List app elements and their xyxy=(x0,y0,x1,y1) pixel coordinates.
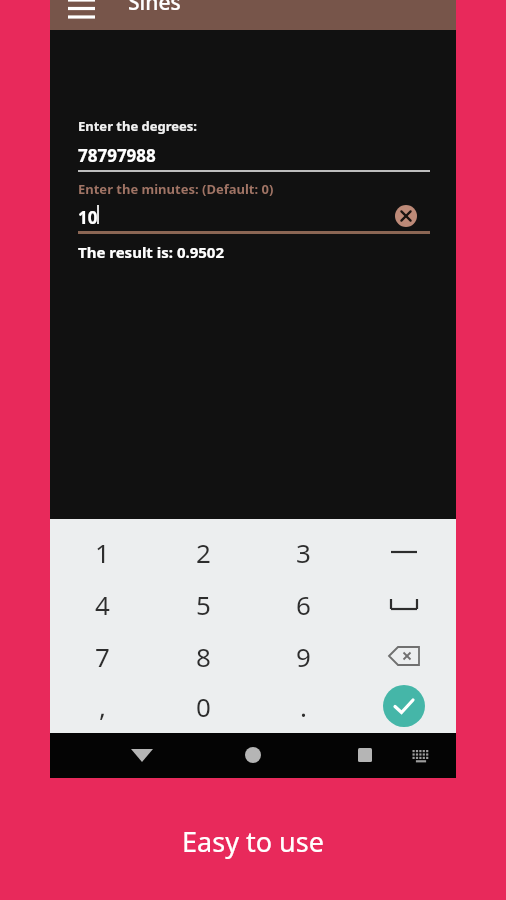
staticText: 0 xyxy=(196,689,211,724)
staticText: 10 xyxy=(78,206,98,229)
staticText: Sines xyxy=(128,0,181,17)
staticText: 3 xyxy=(296,535,311,570)
button[interactable]: 9 xyxy=(253,630,353,682)
button[interactable]: 8 xyxy=(153,630,253,682)
button[interactable]: 4 xyxy=(52,578,152,630)
staticText: 5 xyxy=(196,587,211,622)
button[interactable]: 5 xyxy=(153,578,253,630)
button[interactable]: 6 xyxy=(253,578,353,630)
button[interactable]: Home xyxy=(235,744,271,766)
button[interactable]: Back xyxy=(122,744,162,766)
button[interactable]: 0 xyxy=(153,680,253,732)
staticText: 6 xyxy=(296,587,311,622)
button[interactable]: Switch keyboard xyxy=(405,744,437,766)
staticText: The result is: 0.9502 xyxy=(78,242,225,262)
staticText: . xyxy=(300,689,307,724)
button[interactable]: 7 xyxy=(52,630,152,682)
button[interactable]: Minus xyxy=(354,526,454,578)
staticText: , xyxy=(99,689,106,724)
button[interactable]: Clear text xyxy=(395,205,417,227)
button[interactable]: Recents xyxy=(347,744,383,766)
staticText: 8 xyxy=(196,639,211,674)
button[interactable]: Space xyxy=(354,578,454,630)
button[interactable]: , xyxy=(52,680,152,732)
button[interactable]: 1 xyxy=(52,526,152,578)
button[interactable]: Backspace xyxy=(354,630,454,682)
staticText: 1 xyxy=(95,535,110,570)
button[interactable]: Menu xyxy=(60,0,108,14)
button[interactable]: Done xyxy=(383,685,425,727)
staticText: Enter the degrees: xyxy=(78,117,198,135)
staticText: Easy to use xyxy=(0,823,506,860)
button[interactable]: . xyxy=(253,680,353,732)
staticText: Enter the minutes: (Default: 0) xyxy=(78,180,274,198)
button[interactable]: 3 xyxy=(253,526,353,578)
staticText: 4 xyxy=(95,587,110,622)
staticText: 9 xyxy=(296,639,311,674)
staticText: 2 xyxy=(196,535,211,570)
staticText: 78797988 xyxy=(78,144,156,167)
button[interactable]: 2 xyxy=(153,526,253,578)
staticText: 7 xyxy=(95,639,110,674)
